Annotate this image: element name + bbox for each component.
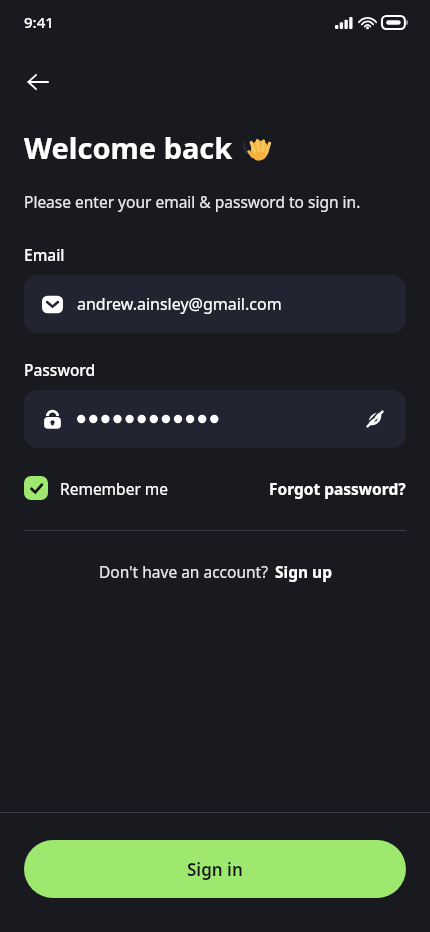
staticText: Please enter your email & password to si… [24,191,361,212]
button[interactable]: Sign up [275,561,332,582]
staticText: Email [24,244,65,265]
staticText: Forgot password? [269,478,406,499]
staticText: 9:41 [24,12,54,32]
button[interactable]: Forgot password? [269,478,406,499]
staticText: Sign up [275,561,332,582]
staticText: Remember me [60,478,169,499]
staticText: Don't have an account? [99,561,268,582]
button[interactable]: Sign in [24,840,406,898]
staticText: andrew.ainsley@gmail.com [77,293,282,315]
button[interactable]: Back [14,58,62,106]
button[interactable]: Remember me [24,476,169,500]
staticText: Sign in [187,858,243,881]
button[interactable]: andrew.ainsley@gmail.com [24,275,406,333]
staticText: Welcome back [24,128,233,167]
button[interactable]: Hide password [24,390,406,448]
button[interactable]: Hide password [360,404,390,434]
staticText: Password [24,359,96,380]
